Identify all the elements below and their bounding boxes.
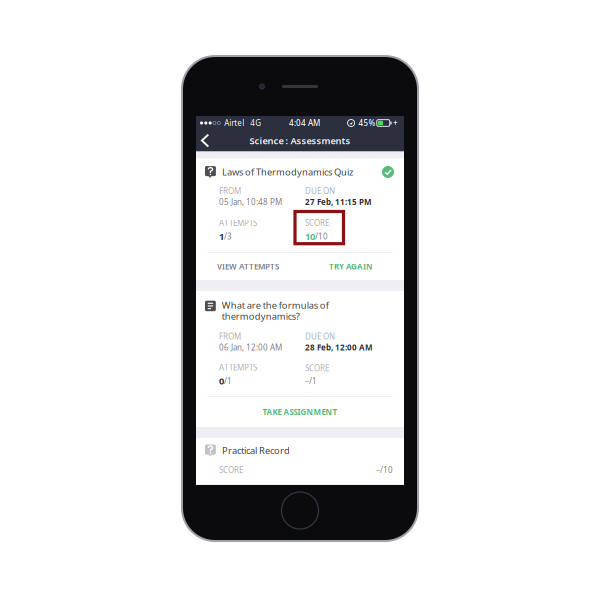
- button[interactable]: Back: [196, 130, 214, 151]
- button[interactable]: TAKE ASSIGNMENT: [196, 397, 404, 427]
- staticText: 05 Jan, 10:48 PM: [219, 197, 282, 207]
- staticText: SCORE: [219, 465, 243, 475]
- button[interactable]: VIEW ATTEMPTS: [196, 253, 287, 280]
- staticText: thermodynamics?: [222, 310, 300, 322]
- staticText: 06 Jan, 12:00 AM: [219, 342, 282, 353]
- staticText: +: [393, 118, 398, 128]
- staticText: SCORE: [305, 217, 329, 228]
- staticText: FROM: [219, 185, 241, 196]
- staticText: ATTEMPTS: [219, 362, 257, 373]
- staticText: 27 Feb, 11:15 PM: [305, 197, 372, 207]
- staticText: DUE ON: [305, 185, 335, 196]
- staticText: –: [376, 465, 380, 475]
- staticText: /1: [309, 375, 317, 386]
- staticText: 28 Feb, 12:00 AM: [305, 342, 373, 353]
- staticText: Science : Assessments: [249, 135, 350, 147]
- staticText: Laws of Thermodynamics Quiz: [222, 166, 353, 178]
- staticText: ATTEMPTS: [219, 217, 257, 228]
- staticText: /1: [224, 375, 232, 386]
- staticText: TRY AGAIN: [329, 261, 373, 272]
- staticText: DUE ON: [305, 331, 335, 342]
- staticText: 45%: [355, 118, 376, 128]
- staticText: –: [305, 375, 309, 386]
- staticText: Airtel 4G: [220, 118, 261, 128]
- staticText: TAKE ASSIGNMENT: [262, 407, 337, 417]
- staticText: SCORE: [305, 363, 329, 373]
- staticText: What are the formulas of: [222, 299, 329, 311]
- staticText: VIEW ATTEMPTS: [217, 261, 279, 272]
- staticText: Practical Record: [222, 444, 290, 457]
- staticText: /10: [380, 465, 393, 475]
- staticText: 1: [219, 230, 224, 242]
- button[interactable]: TRY AGAIN: [321, 253, 404, 280]
- staticText: 10: [305, 230, 315, 242]
- staticText: 4:04 AM: [289, 118, 320, 128]
- staticText: /3: [224, 231, 232, 242]
- staticText: /10: [315, 231, 328, 242]
- staticText: FROM: [219, 331, 241, 342]
- staticText: 0: [219, 375, 224, 387]
